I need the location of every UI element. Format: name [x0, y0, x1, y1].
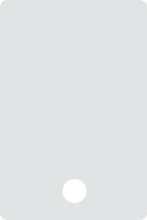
button[interactable]: Record: [62, 179, 86, 203]
